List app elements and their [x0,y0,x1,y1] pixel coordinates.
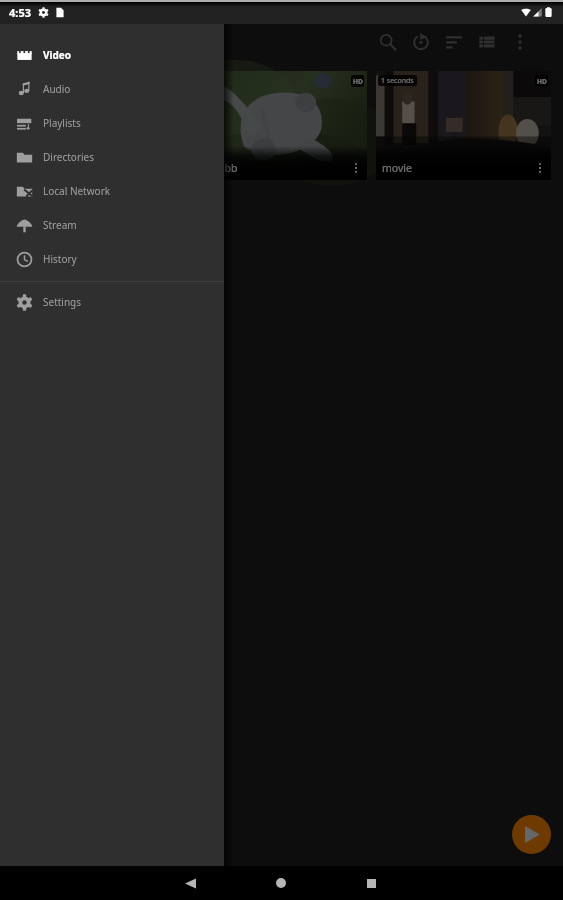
button[interactable]: More options [503,25,536,58]
staticText: Audio [43,82,71,96]
button[interactable]: HD [9,71,183,180]
staticText: HD [537,77,547,86]
staticText: Settings [43,295,82,309]
staticText: movie [382,161,412,175]
staticText: Stream [43,218,77,232]
staticText: Directories [43,150,95,164]
button[interactable]: Display mode [470,25,503,58]
button[interactable]: Home [263,866,299,900]
staticText: bbb [15,161,35,175]
button[interactable]: Playlists [0,106,224,140]
button[interactable]: Stream [0,208,224,242]
button[interactable]: Video [0,38,224,72]
staticText: 1 seconds [381,76,414,86]
staticText: Video [43,48,72,62]
button[interactable]: Directories [0,140,224,174]
staticText: Playlists [43,116,81,130]
button[interactable]: Sort [437,25,470,58]
button[interactable]: Back [172,866,208,900]
button[interactable]: HD [192,71,367,180]
button[interactable]: Search [371,25,404,58]
button[interactable]: Settings [0,285,224,319]
staticText: HD [353,77,363,86]
button[interactable]: HD [376,71,551,180]
staticText: 4:53 [9,5,31,20]
staticText: Local Network [43,184,111,198]
button[interactable]: Local Network [0,174,224,208]
staticText: bbb [218,161,238,175]
button[interactable]: Audio [0,72,224,106]
button[interactable]: History [0,242,224,276]
button[interactable]: Play all [512,815,551,854]
staticText: History [43,252,77,266]
button[interactable]: Recent apps [353,866,389,900]
button[interactable]: Last playlist [404,25,437,58]
